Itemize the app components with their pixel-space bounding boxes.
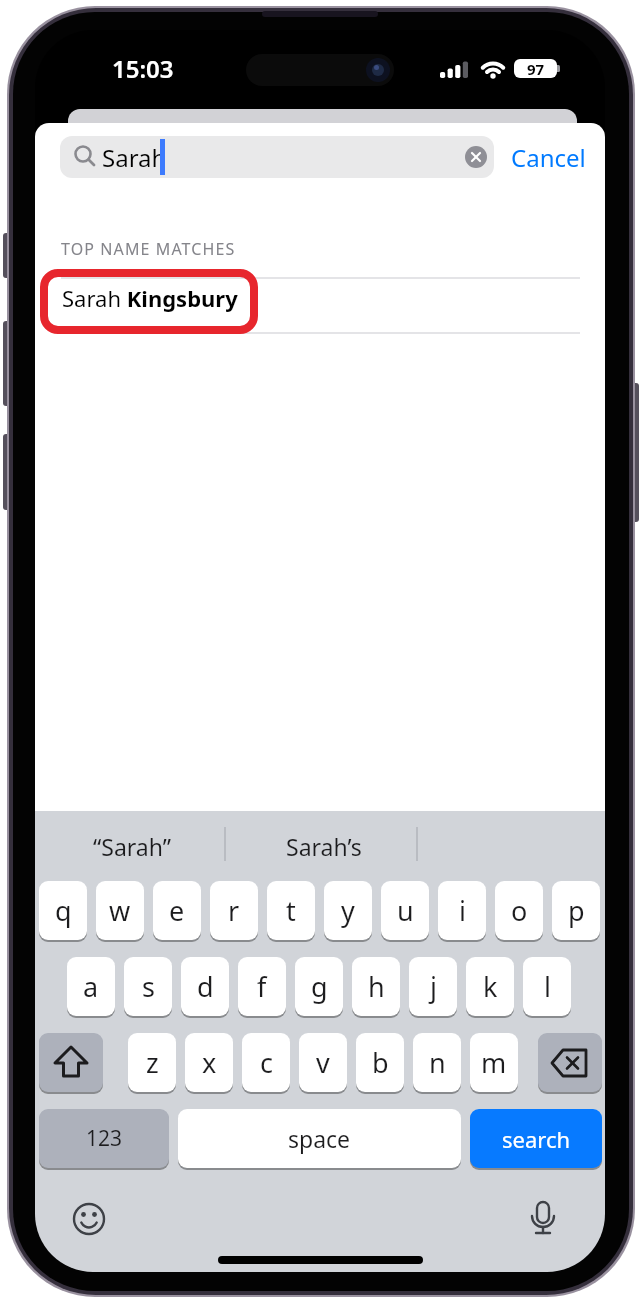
staticText: j: [430, 968, 437, 1005]
button[interactable]: h: [352, 957, 400, 1016]
button[interactable]: [39, 1033, 103, 1092]
staticText: r: [228, 892, 240, 929]
staticText: x: [202, 1044, 217, 1081]
button[interactable]: m: [470, 1033, 518, 1092]
button[interactable]: j: [409, 957, 457, 1016]
button[interactable]: 123: [39, 1109, 169, 1168]
button[interactable]: Cancel: [511, 136, 597, 178]
staticText: TOP NAME MATCHES: [61, 238, 236, 260]
button[interactable]: [526, 1200, 560, 1238]
button[interactable]: s: [124, 957, 172, 1016]
button[interactable]: o: [495, 881, 543, 940]
staticText: g: [311, 968, 328, 1005]
staticText: y: [341, 892, 355, 929]
button[interactable]: k: [466, 957, 514, 1016]
staticText: Sarah Kingsbury: [62, 283, 238, 313]
button[interactable]: t: [267, 881, 315, 940]
button[interactable]: [72, 1202, 106, 1236]
staticText: 97: [527, 59, 545, 78]
staticText: e: [169, 892, 185, 929]
button[interactable]: space: [178, 1109, 461, 1168]
button[interactable]: i: [438, 881, 486, 940]
staticText: a: [83, 968, 99, 1005]
staticText: m: [481, 1044, 507, 1081]
button[interactable]: b: [356, 1033, 404, 1092]
staticText: b: [372, 1044, 389, 1081]
button[interactable]: g: [295, 957, 343, 1016]
staticText: v: [316, 1044, 330, 1081]
button[interactable]: r: [210, 881, 258, 940]
button[interactable]: x: [185, 1033, 233, 1092]
staticText: l: [544, 968, 551, 1005]
button[interactable]: [40, 269, 258, 334]
staticText: s: [142, 968, 155, 1005]
button[interactable]: a: [67, 957, 115, 1016]
button[interactable]: p: [552, 881, 600, 940]
staticText: 15:03: [112, 52, 174, 82]
button[interactable]: e: [153, 881, 201, 940]
staticText: z: [146, 1044, 159, 1081]
staticText: c: [260, 1044, 273, 1081]
staticText: p: [568, 892, 585, 929]
staticText: n: [429, 1044, 446, 1081]
staticText: Sarah’s: [286, 831, 362, 862]
button[interactable]: n: [413, 1033, 461, 1092]
staticText: Sarah: [102, 141, 167, 174]
staticText: 123: [86, 1124, 123, 1153]
button[interactable]: u: [381, 881, 429, 940]
button[interactable]: [60, 136, 494, 178]
staticText: i: [459, 892, 466, 929]
button[interactable]: [538, 1033, 602, 1092]
button[interactable]: q: [39, 881, 87, 940]
staticText: w: [109, 892, 131, 929]
staticText: t: [286, 892, 296, 929]
button[interactable]: search: [470, 1109, 602, 1168]
staticText: f: [257, 968, 267, 1005]
button[interactable]: y: [324, 881, 372, 940]
staticText: q: [55, 892, 72, 929]
staticText: h: [368, 968, 385, 1005]
button[interactable]: “Sarah”: [39, 815, 224, 877]
button[interactable]: z: [128, 1033, 176, 1092]
button[interactable]: c: [242, 1033, 290, 1092]
button[interactable]: l: [523, 957, 571, 1016]
staticText: k: [483, 968, 498, 1005]
staticText: “Sarah”: [93, 831, 171, 862]
staticText: o: [511, 892, 528, 929]
button[interactable]: f: [238, 957, 286, 1016]
staticText: u: [397, 892, 414, 929]
staticText: search: [502, 1124, 571, 1154]
button[interactable]: w: [96, 881, 144, 940]
staticText: d: [197, 968, 214, 1005]
staticText: Cancel: [511, 141, 586, 174]
button[interactable]: Sarah’s: [231, 815, 416, 877]
button[interactable]: v: [299, 1033, 347, 1092]
button[interactable]: d: [181, 957, 229, 1016]
staticText: space: [288, 1123, 351, 1154]
